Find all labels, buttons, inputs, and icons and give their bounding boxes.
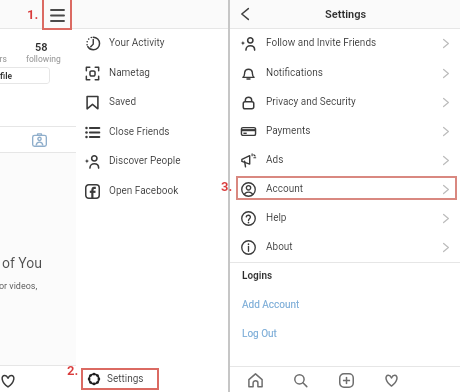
staticText: following bbox=[26, 54, 61, 64]
button[interactable]: Search bbox=[287, 367, 313, 392]
staticText: 58 bbox=[35, 41, 48, 54]
button[interactable]: Close Friends bbox=[76, 118, 229, 146]
staticText: Notifications bbox=[266, 67, 323, 79]
staticText: 2. bbox=[67, 363, 79, 378]
staticText: Payments bbox=[266, 125, 311, 137]
staticText: Your Activity bbox=[109, 37, 165, 49]
staticText: Discover People bbox=[109, 155, 181, 167]
staticText: Help bbox=[266, 212, 287, 224]
staticText: Logins bbox=[242, 270, 273, 282]
button[interactable]: Privacy and Security bbox=[229, 88, 460, 116]
button[interactable]: Log Out bbox=[242, 328, 277, 340]
staticText: 3. bbox=[221, 179, 233, 194]
button[interactable]: Discover People bbox=[76, 147, 229, 175]
staticText: Saved bbox=[109, 96, 137, 108]
staticText: About bbox=[266, 241, 293, 253]
staticText: of You bbox=[2, 255, 42, 271]
staticText: Ads bbox=[266, 154, 284, 166]
button[interactable]: Account bbox=[229, 175, 460, 203]
button[interactable]: Saved bbox=[76, 88, 229, 116]
button[interactable]: Add Account bbox=[242, 299, 300, 311]
staticText: file bbox=[0, 71, 13, 81]
button[interactable]: Activity bbox=[378, 367, 404, 392]
staticText: Open Facebook bbox=[109, 185, 179, 197]
staticText: ers bbox=[0, 54, 7, 64]
staticText: Privacy and Security bbox=[266, 96, 356, 108]
staticText: Add Account bbox=[242, 299, 300, 311]
button[interactable]: file bbox=[0, 67, 50, 84]
staticText: Log Out bbox=[242, 328, 277, 340]
staticText: Nametag bbox=[109, 67, 150, 79]
button[interactable]: New post bbox=[333, 367, 359, 392]
button[interactable]: Tagged photos bbox=[27, 128, 51, 152]
staticText: Account bbox=[266, 183, 304, 195]
button[interactable]: Nametag bbox=[76, 59, 229, 87]
button[interactable]: Notifications bbox=[229, 59, 460, 87]
staticText: Settings bbox=[325, 8, 367, 21]
button[interactable]: Home bbox=[242, 367, 268, 392]
staticText: 1. bbox=[27, 7, 39, 22]
button[interactable]: About bbox=[229, 233, 460, 261]
button[interactable]: Open Facebook bbox=[76, 177, 229, 205]
button[interactable]: Ads bbox=[229, 146, 460, 174]
button[interactable]: Payments bbox=[229, 117, 460, 145]
button[interactable]: Menu bbox=[42, 0, 72, 30]
button[interactable]: Settings bbox=[81, 368, 159, 390]
staticText: s or videos, bbox=[0, 281, 38, 292]
button[interactable]: Follow and Invite Friends bbox=[229, 29, 460, 57]
button[interactable]: Your Activity bbox=[76, 29, 229, 57]
button[interactable]: Back bbox=[233, 0, 257, 28]
staticText: Settings bbox=[107, 373, 144, 385]
button[interactable]: Help bbox=[229, 204, 460, 232]
button[interactable]: Likes bbox=[0, 368, 21, 392]
staticText: Close Friends bbox=[109, 126, 170, 138]
staticText: Follow and Invite Friends bbox=[266, 37, 377, 49]
